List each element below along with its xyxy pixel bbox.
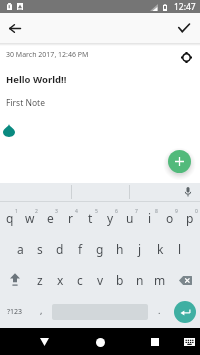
button[interactable]: 3 <box>40 202 60 233</box>
button[interactable]: , <box>30 296 52 328</box>
staticText: 30 March 2017, 12:46 PM <box>6 50 89 60</box>
staticText: p <box>186 210 194 226</box>
button[interactable]: j <box>130 233 150 264</box>
button[interactable]: 0 <box>180 202 200 233</box>
staticText: 9 <box>175 208 178 215</box>
button[interactable]: . <box>148 296 170 328</box>
button[interactable]: Shift <box>0 264 30 296</box>
button[interactable]: d <box>50 233 70 264</box>
button[interactable]: s <box>30 233 50 264</box>
staticText: w <box>25 210 35 226</box>
button[interactable]: Recents <box>145 332 165 352</box>
button[interactable]: 9 <box>160 202 180 233</box>
staticText: c <box>77 272 83 288</box>
staticText: j <box>138 241 142 257</box>
staticText: v <box>97 272 104 288</box>
staticText: 6 <box>115 208 118 215</box>
staticText: m <box>154 272 166 288</box>
button[interactable]: z <box>30 264 50 296</box>
button[interactable]: x <box>50 264 70 296</box>
button[interactable]: Enter <box>170 296 200 328</box>
button[interactable]: m <box>150 264 170 296</box>
button[interactable]: Switch keyboard <box>181 333 198 350</box>
staticText: Hello World!! <box>6 73 67 86</box>
button[interactable]: ?123 <box>0 296 30 328</box>
staticText: r <box>68 210 73 226</box>
staticText: 7 <box>135 208 138 215</box>
button[interactable]: Backspace <box>170 264 200 296</box>
button[interactable]: 2 <box>20 202 40 233</box>
button[interactable]: g <box>90 233 110 264</box>
button[interactable]: Voice input <box>181 185 195 199</box>
button[interactable]: b <box>110 264 130 296</box>
staticText: 4 <box>75 208 78 215</box>
staticText: 3 <box>55 208 58 215</box>
button[interactable]: v <box>90 264 110 296</box>
staticText: u <box>126 210 134 226</box>
button[interactable]: f <box>70 233 90 264</box>
button[interactable]: c <box>70 264 90 296</box>
staticText: 5 <box>95 208 98 215</box>
button[interactable]: k <box>150 233 170 264</box>
button[interactable]: Back <box>34 332 54 352</box>
button[interactable]: 4 <box>60 202 80 233</box>
button[interactable]: a <box>10 233 30 264</box>
button[interactable]: 7 <box>120 202 140 233</box>
staticText: l <box>178 241 182 257</box>
button[interactable]: 6 <box>100 202 120 233</box>
button[interactable]: Add note <box>168 150 191 173</box>
staticText: ?123 <box>7 307 23 317</box>
staticText: b <box>116 272 124 288</box>
staticText: . <box>158 304 161 316</box>
button[interactable]: 1 <box>0 202 20 233</box>
staticText: y <box>107 210 114 226</box>
staticText: 8 <box>155 208 158 215</box>
staticText: q <box>6 210 14 226</box>
button[interactable]: h <box>110 233 130 264</box>
staticText: i <box>148 210 152 226</box>
staticText: o <box>166 210 174 226</box>
staticText: 0 <box>195 208 198 215</box>
staticText: x <box>57 272 64 288</box>
staticText: a <box>17 241 24 257</box>
staticText: t <box>88 210 93 226</box>
staticText: s <box>37 241 43 257</box>
staticText: 12:47 <box>174 1 196 13</box>
staticText: 1 <box>15 208 18 215</box>
button[interactable]: l <box>170 233 190 264</box>
button[interactable]: Location <box>176 47 196 67</box>
staticText: n <box>136 272 144 288</box>
staticText: , <box>40 304 43 316</box>
button[interactable]: Save <box>174 18 194 38</box>
staticText: g <box>96 241 104 257</box>
staticText: d <box>56 241 64 257</box>
staticText: z <box>37 272 43 288</box>
staticText: h <box>116 241 124 257</box>
button[interactable]: n <box>130 264 150 296</box>
button[interactable]: Back <box>5 18 25 38</box>
staticText: f <box>78 241 83 257</box>
staticText: k <box>157 241 164 257</box>
button[interactable]: Home <box>90 332 110 352</box>
button[interactable]: 8 <box>140 202 160 233</box>
button[interactable]: 5 <box>80 202 100 233</box>
staticText: First Note <box>6 97 45 109</box>
staticText: 2 <box>35 208 38 215</box>
staticText: e <box>47 210 54 226</box>
